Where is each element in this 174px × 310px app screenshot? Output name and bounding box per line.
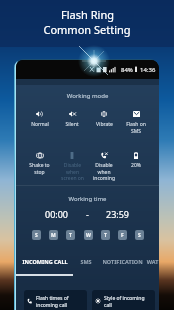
staticText: Working mode: [16, 92, 159, 100]
staticText: T: [104, 232, 107, 239]
button[interactable]: Shake to stop: [23, 151, 56, 175]
staticText: Normal: [31, 121, 49, 128]
button[interactable]: Disable when incoming: [88, 151, 120, 181]
button[interactable]: NOTIFICATION: [98, 255, 146, 267]
button[interactable]: M: [49, 230, 58, 240]
button[interactable]: 23:59: [106, 208, 130, 220]
staticText: Flash Ring: [61, 7, 114, 22]
staticText: Flash times of incoming call: [36, 295, 69, 308]
staticText: S: [35, 232, 38, 239]
staticText: 14:36: [140, 66, 156, 74]
staticText: Silent: [65, 121, 79, 128]
staticText: F: [121, 232, 124, 239]
staticText: Flash on SMS: [126, 121, 146, 134]
button[interactable]: S: [32, 230, 41, 240]
button[interactable]: Silent: [56, 110, 88, 128]
button[interactable]: SMS: [73, 255, 98, 267]
staticText: INCOMING CALL: [22, 258, 68, 265]
staticText: Shake to stop: [29, 162, 50, 175]
staticText: 84%: [121, 66, 133, 74]
button[interactable]: Flash times of incoming call: [24, 290, 87, 310]
staticText: SMS: [80, 258, 92, 265]
staticText: S: [138, 232, 141, 239]
button[interactable]: Normal: [23, 110, 56, 128]
button[interactable]: WATCH: [146, 255, 159, 267]
button[interactable]: W: [84, 230, 93, 240]
staticText: Working time: [16, 195, 159, 203]
staticText: T: [69, 232, 72, 239]
button[interactable]: Disable when screen on: [56, 151, 88, 181]
staticText: W: [86, 232, 91, 239]
button[interactable]: 00:00: [45, 208, 69, 220]
button[interactable]: Style of incoming call: [92, 290, 155, 310]
staticText: Style of incoming call: [104, 295, 145, 308]
staticText: Vibrate: [96, 121, 113, 128]
staticText: M: [51, 232, 56, 239]
button[interactable]: Flash on SMS: [120, 110, 152, 134]
button[interactable]: 20%: [120, 151, 152, 169]
staticText: -: [86, 208, 89, 220]
button[interactable]: S: [135, 230, 144, 240]
staticText: 20%: [131, 162, 141, 169]
staticText: Disable when screen on: [61, 162, 84, 181]
button[interactable]: Vibrate: [88, 110, 120, 128]
button[interactable]: F: [118, 230, 127, 240]
button[interactable]: INCOMING CALL: [16, 255, 73, 267]
button[interactable]: T: [66, 230, 75, 240]
staticText: WATCH: [146, 258, 159, 265]
staticText: Disable when incoming: [93, 162, 115, 181]
button[interactable]: T: [101, 230, 110, 240]
staticText: Common Setting: [43, 22, 131, 37]
staticText: NOTIFICATION: [102, 258, 143, 265]
